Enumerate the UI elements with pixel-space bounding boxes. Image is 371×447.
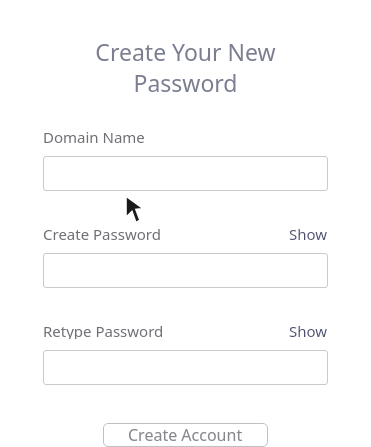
staticText: Create Account [128, 424, 243, 446]
button[interactable]: Create Account [103, 423, 268, 447]
button[interactable] [43, 350, 328, 385]
button[interactable] [43, 156, 328, 191]
staticText: Create Your New Password [43, 36, 328, 98]
staticText: Create Password [43, 224, 161, 242]
staticText: Domain Name [43, 127, 145, 145]
staticText: Show [289, 224, 328, 242]
button[interactable]: Show [289, 321, 328, 339]
button[interactable] [43, 253, 328, 288]
button[interactable]: Show [289, 224, 328, 242]
staticText: Show [289, 321, 328, 339]
staticText: Retype Password [43, 321, 164, 339]
